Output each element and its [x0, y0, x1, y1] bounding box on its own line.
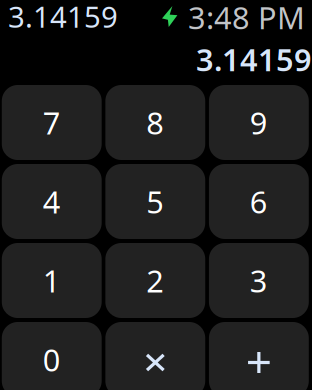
button[interactable]: 2: [105, 243, 205, 318]
staticText: 4: [43, 181, 61, 222]
button[interactable]: 0: [2, 322, 102, 390]
staticText: 0: [43, 339, 61, 380]
button[interactable]: Add: [209, 322, 309, 390]
button[interactable]: 8: [105, 85, 205, 160]
staticText: 5: [146, 181, 164, 222]
button[interactable]: 3: [209, 243, 309, 318]
staticText: 3.14159: [196, 39, 312, 80]
button[interactable]: 1: [2, 243, 102, 318]
button[interactable]: 9: [209, 85, 309, 160]
staticText: 1: [43, 260, 61, 301]
staticText: 2: [146, 260, 164, 301]
button[interactable]: 7: [2, 85, 102, 160]
staticText: 6: [250, 181, 268, 222]
button[interactable]: Multiply: [105, 322, 205, 390]
button[interactable]: 6: [209, 164, 309, 239]
staticText: 7: [43, 102, 61, 143]
button[interactable]: 4: [2, 164, 102, 239]
staticText: 3: [250, 260, 268, 301]
button[interactable]: 5: [105, 164, 205, 239]
staticText: 9: [250, 102, 268, 143]
staticText: 3.14159: [8, 0, 118, 36]
staticText: 8: [146, 102, 164, 143]
staticText: 3:48 PM: [188, 0, 305, 38]
